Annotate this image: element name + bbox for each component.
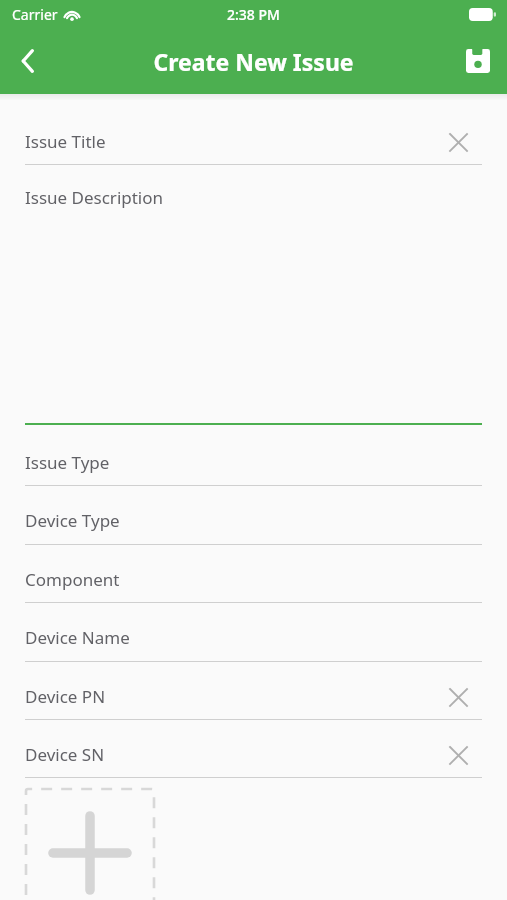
button[interactable]: Clear [434,122,482,162]
button[interactable]: Component [0,559,507,599]
button[interactable]: Issue Title [0,121,507,161]
button[interactable]: Back [0,28,56,94]
staticText: Device SN [25,743,105,766]
staticText: Issue Description [25,186,164,209]
staticText: Create New Issue [153,46,354,77]
button[interactable]: Clear [434,677,482,717]
button[interactable]: Save [449,28,507,94]
staticText: Component [25,568,120,591]
staticText: Carrier [12,5,58,24]
staticText: Issue Type [25,451,110,474]
button[interactable]: Device Type [0,500,507,540]
button[interactable]: Device SN [0,734,507,774]
staticText: Device Type [25,509,120,532]
staticText: 2:38 PM [227,5,280,24]
staticText: Device Name [25,626,130,649]
button[interactable]: Issue Description [0,177,507,217]
button[interactable]: Clear [434,735,482,775]
staticText: Device PN [25,685,106,708]
button[interactable]: Issue Type [0,442,507,482]
button[interactable]: Device Name [0,617,507,657]
staticText: Issue Title [25,130,106,153]
button[interactable]: Device PN [0,676,507,716]
button[interactable]: Add photo [25,788,155,900]
